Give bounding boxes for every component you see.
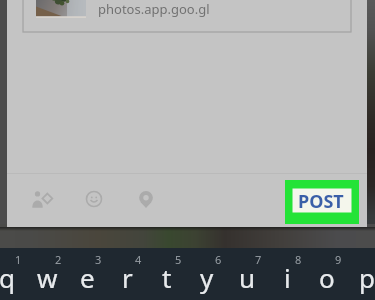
staticText: 7 [255,252,262,267]
staticText: photos.app.goo.gl [98,0,210,18]
staticText: t [162,260,172,295]
staticText: r [122,260,133,295]
staticText: p [359,260,375,295]
button[interactable]: Feeling or activity [86,191,102,207]
staticText: 2 [55,252,62,267]
staticText: w [37,260,58,295]
staticText: u [239,260,256,295]
staticText: q [0,260,15,295]
staticText: o [319,260,335,295]
button[interactable] [287,181,359,222]
staticText: 8 [295,252,302,267]
staticText: 4 [135,252,142,267]
staticText: y [200,260,214,295]
staticText: e [80,260,95,295]
staticText: i [284,260,291,295]
staticText: 1 [15,252,22,267]
staticText: 9 [335,252,342,267]
staticText: 3 [95,252,102,267]
staticText: 5 [175,252,182,267]
button[interactable]: Tag people [31,191,52,208]
button[interactable]: Check in location [139,191,153,208]
staticText: 6 [215,252,222,267]
staticText: POST [298,189,344,214]
